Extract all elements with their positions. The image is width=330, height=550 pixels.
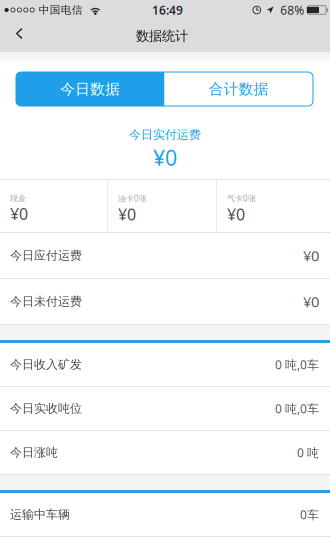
button[interactable]: 今日未付运费 [0, 279, 330, 324]
button[interactable]: 今日应付运费 [0, 233, 330, 278]
button[interactable]: 今日实收吨位 [0, 387, 330, 430]
staticText: ¥0 [227, 204, 245, 225]
staticText: 0车 [300, 506, 319, 522]
staticText: 今日收入矿发 [10, 357, 82, 372]
staticText: 现金 [10, 193, 26, 203]
button[interactable]: 合计数据 [164, 72, 313, 106]
button[interactable]: Back [0, 20, 38, 52]
staticText: 油卡0张 [118, 193, 147, 204]
button[interactable]: 今日涨吨 [0, 431, 330, 474]
button[interactable]: 今日数据 [16, 72, 164, 106]
staticText: 今日实付运费 [129, 127, 201, 142]
staticText: ¥0 [118, 204, 136, 225]
staticText: 今日未付运费 [10, 294, 82, 309]
staticText: 0 吨,0车 [275, 356, 319, 372]
staticText: 今日数据 [60, 80, 120, 98]
staticText: 今日涨吨 [10, 445, 58, 460]
button[interactable]: 运输中车辆 [0, 493, 330, 536]
staticText: 16:49 [152, 2, 183, 18]
staticText: 今日应付运费 [10, 248, 82, 263]
staticText: 中国电信 [39, 3, 83, 16]
staticText: 68% [280, 2, 304, 18]
staticText: 气卡0张 [227, 193, 256, 204]
staticText: ¥0 [153, 143, 177, 171]
staticText: 0 吨,0车 [275, 400, 319, 416]
staticText: 数据统计 [136, 28, 188, 44]
button[interactable]: 今日收入矿发 [0, 343, 330, 386]
staticText: ¥0 [303, 292, 319, 311]
staticText: 0 吨 [297, 444, 319, 460]
staticText: ¥0 [303, 246, 319, 265]
staticText: ¥0 [10, 203, 28, 224]
staticText: 今日实收吨位 [10, 401, 82, 416]
staticText: 运输中车辆 [10, 507, 70, 522]
staticText: 合计数据 [209, 80, 269, 98]
